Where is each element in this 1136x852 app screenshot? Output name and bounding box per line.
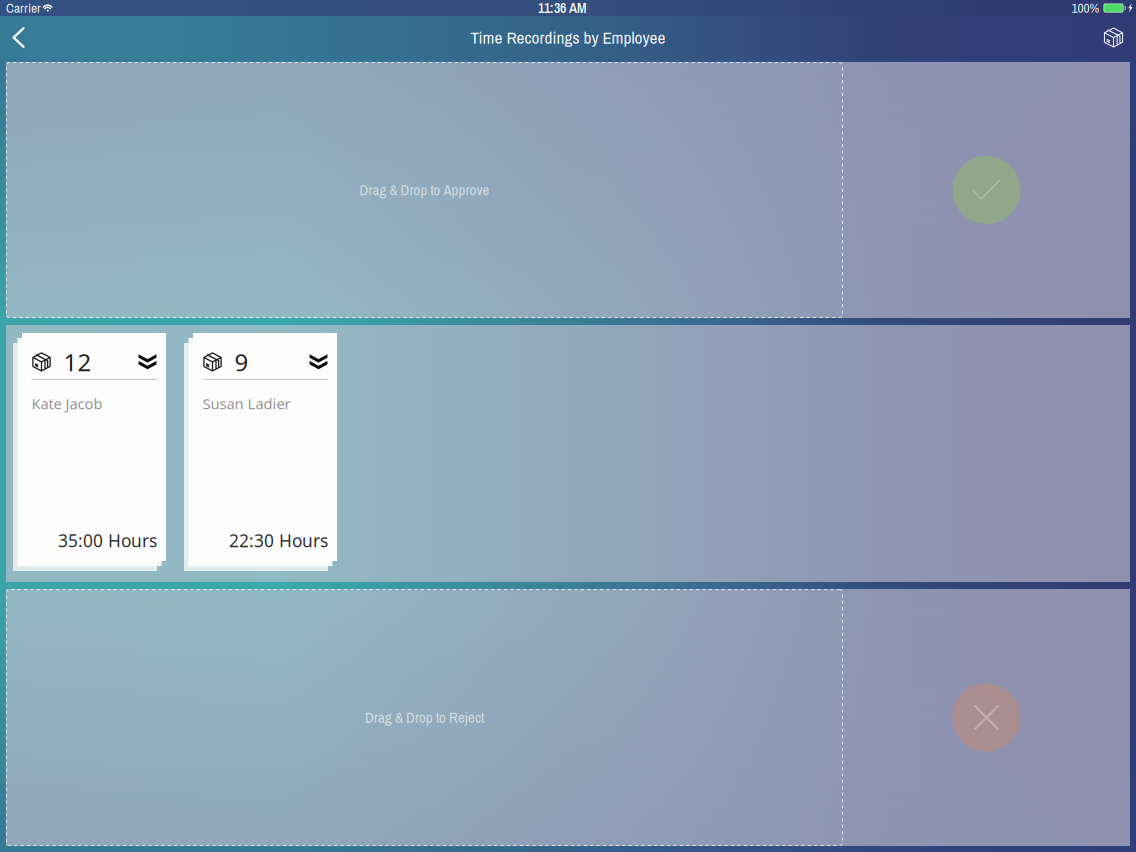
button[interactable]: 9 [184,333,337,571]
staticText: 22:30 Hours [229,529,328,552]
button[interactable]: Back [0,16,38,59]
staticText: 12 [63,346,91,378]
staticText: Time Recordings by Employee [470,26,665,49]
button[interactable]: Approve [6,62,1130,318]
button[interactable]: Packages [1091,16,1136,59]
staticText: Carrier [6,0,41,17]
staticText: Drag & Drop to Approve [359,180,489,200]
staticText: Drag & Drop to Reject [365,708,484,727]
staticText: 100% [1071,0,1099,17]
staticText: 35:00 Hours [58,529,157,552]
staticText: Kate Jacob [31,394,102,413]
staticText: 9 [234,346,248,378]
button[interactable]: Reject [6,589,1130,846]
button[interactable]: 12 [13,333,166,571]
staticText: 11:36 AM [538,0,587,17]
staticText: Susan Ladier [202,394,290,413]
